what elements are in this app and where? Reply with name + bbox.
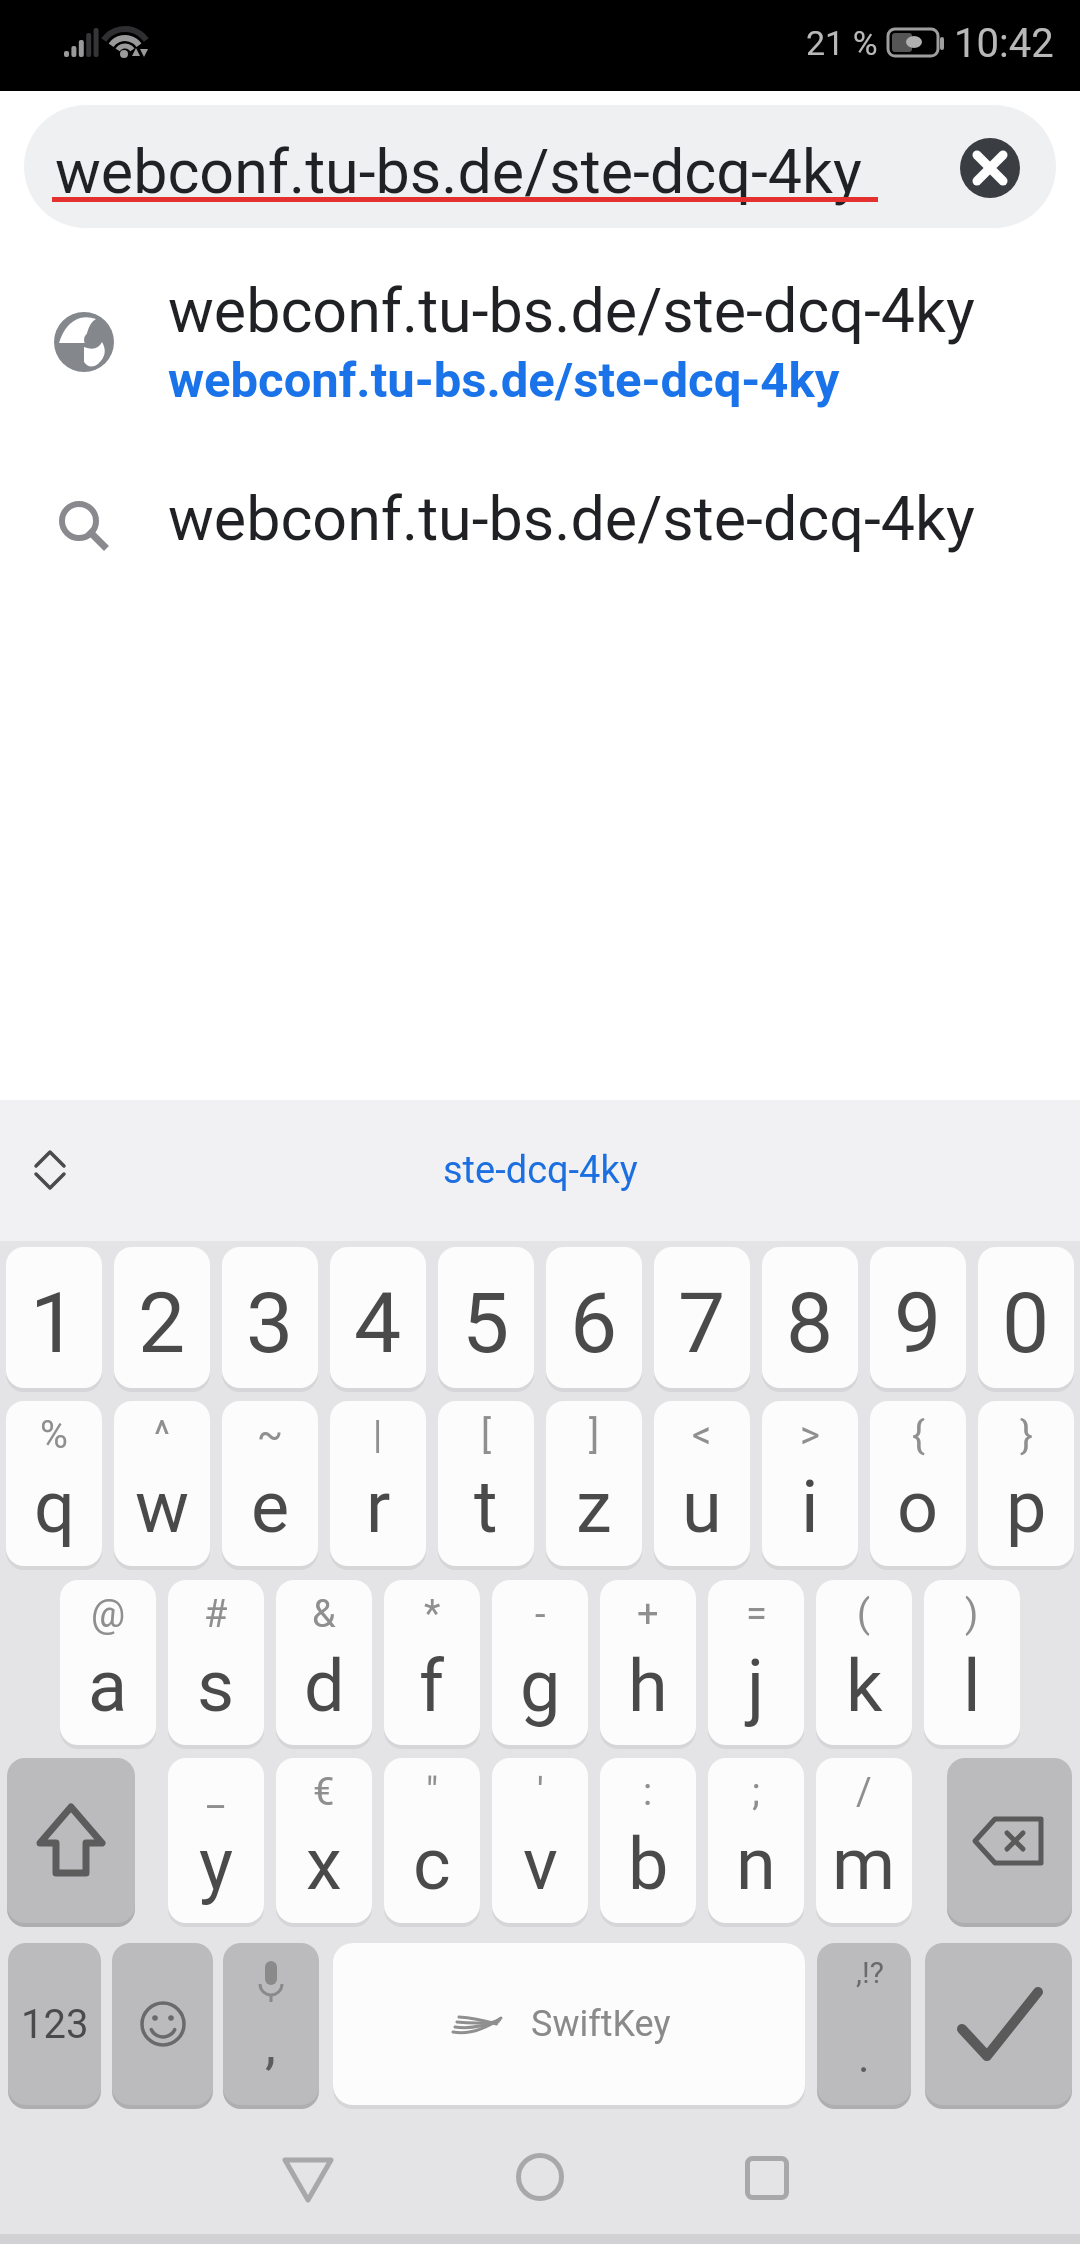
staticText: v <box>523 1822 558 1906</box>
button[interactable]: 6 <box>546 1247 642 1388</box>
button[interactable]: } <box>978 1401 1074 1566</box>
staticText: ] <box>589 1413 600 1458</box>
staticText: webconf.tu-bs.de/ste-dcq-4ky <box>55 136 862 207</box>
staticText: | <box>373 1413 383 1458</box>
staticText: 10:42 <box>954 20 1054 67</box>
staticText: k <box>846 1644 883 1728</box>
button[interactable]: 5 <box>438 1247 534 1388</box>
staticText: h <box>628 1644 668 1728</box>
staticText: [ <box>481 1413 492 1458</box>
staticText: 5 <box>462 1274 510 1372</box>
staticText: n <box>736 1822 776 1906</box>
button[interactable]: 2 <box>114 1247 210 1388</box>
button[interactable]: | <box>330 1401 426 1566</box>
button[interactable]: 123 <box>8 1943 101 2105</box>
button[interactable]: € <box>276 1758 372 1923</box>
button[interactable] <box>947 1758 1072 1923</box>
staticText: e <box>251 1465 290 1549</box>
button[interactable] <box>112 1943 213 2105</box>
button[interactable]: webconf.tu-bs.de/ste-dcq-4ky <box>0 460 1080 600</box>
button[interactable]: 7 <box>654 1247 750 1388</box>
staticText: 123 <box>21 2001 89 2048</box>
staticText: : <box>643 1770 653 1815</box>
staticText: € <box>313 1770 335 1815</box>
button[interactable] <box>34 1150 66 1190</box>
button[interactable]: 9 <box>870 1247 966 1388</box>
staticText: SwiftKey <box>531 2003 671 2045</box>
staticText: % <box>40 1413 68 1458</box>
button[interactable]: [ <box>438 1401 534 1566</box>
button[interactable]: % <box>6 1401 102 1566</box>
button[interactable]: ' <box>492 1758 588 1923</box>
staticText: * <box>424 1592 441 1637</box>
button[interactable] <box>925 1943 1072 2105</box>
button[interactable]: - <box>492 1580 588 1745</box>
staticText: 21 % <box>806 23 878 63</box>
staticText: @ <box>91 1592 126 1637</box>
staticText: z <box>576 1465 612 1549</box>
button[interactable]: ( <box>816 1580 912 1745</box>
button[interactable]: 3 <box>222 1247 318 1388</box>
staticText: d <box>304 1644 345 1728</box>
button[interactable] <box>283 2158 333 2202</box>
button[interactable]: , <box>223 1943 319 2105</box>
button[interactable]: # <box>168 1580 264 1745</box>
staticText: 1 <box>30 1274 78 1372</box>
button[interactable]: _ <box>168 1758 264 1923</box>
button[interactable] <box>7 1758 135 1923</box>
staticText: } <box>1020 1413 1033 1458</box>
staticText: " <box>426 1770 439 1815</box>
button[interactable]: ^ <box>114 1401 210 1566</box>
staticText: 9 <box>894 1274 942 1372</box>
staticText: o <box>897 1465 939 1549</box>
staticText: # <box>204 1592 228 1637</box>
button[interactable]: / <box>816 1758 912 1923</box>
button[interactable]: ] <box>546 1401 642 1566</box>
staticText: , <box>265 2011 277 2077</box>
staticText: 0 <box>1002 1274 1050 1372</box>
staticText: l <box>963 1644 981 1728</box>
button[interactable]: ) <box>924 1580 1020 1745</box>
button[interactable]: 1 <box>6 1247 102 1388</box>
staticText: f <box>419 1644 445 1728</box>
button[interactable] <box>960 138 1020 198</box>
staticText: x <box>306 1822 342 1906</box>
button[interactable]: 4 <box>330 1247 426 1388</box>
staticText: . <box>858 2031 870 2083</box>
button[interactable]: * <box>384 1580 480 1745</box>
button[interactable] <box>24 105 1056 228</box>
staticText: b <box>628 1822 669 1906</box>
button[interactable]: & <box>276 1580 372 1745</box>
staticText: p <box>1006 1465 1047 1549</box>
button[interactable] <box>745 2156 789 2200</box>
button[interactable]: webconf.tu-bs.de/ste-dcq-4ky <box>0 262 1080 442</box>
button[interactable]: ; <box>708 1758 804 1923</box>
button[interactable] <box>516 2153 564 2201</box>
button[interactable]: " <box>384 1758 480 1923</box>
staticText: ' <box>537 1770 544 1815</box>
button[interactable]: = <box>708 1580 804 1745</box>
button[interactable]: SwiftKey <box>333 1943 805 2105</box>
staticText: ,!? <box>856 1955 884 1990</box>
button[interactable]: ,!? <box>817 1943 911 2105</box>
staticText: < <box>692 1413 712 1458</box>
button[interactable]: : <box>600 1758 696 1923</box>
button[interactable]: ste-dcq-4ky <box>0 1100 1080 1241</box>
staticText: q <box>34 1465 75 1549</box>
staticText: + <box>637 1592 659 1637</box>
button[interactable]: @ <box>60 1580 156 1745</box>
button[interactable]: > <box>762 1401 858 1566</box>
button[interactable]: { <box>870 1401 966 1566</box>
button[interactable]: + <box>600 1580 696 1745</box>
button[interactable]: 0 <box>978 1247 1074 1388</box>
button[interactable]: ~ <box>222 1401 318 1566</box>
staticText: ) <box>965 1592 979 1637</box>
staticText: j <box>747 1644 765 1728</box>
staticText: 4 <box>354 1274 402 1372</box>
button[interactable]: < <box>654 1401 750 1566</box>
staticText: { <box>912 1413 925 1458</box>
staticText: 6 <box>570 1274 618 1372</box>
staticText: ^ <box>154 1413 170 1458</box>
staticText: > <box>800 1413 820 1458</box>
button[interactable]: 8 <box>762 1247 858 1388</box>
